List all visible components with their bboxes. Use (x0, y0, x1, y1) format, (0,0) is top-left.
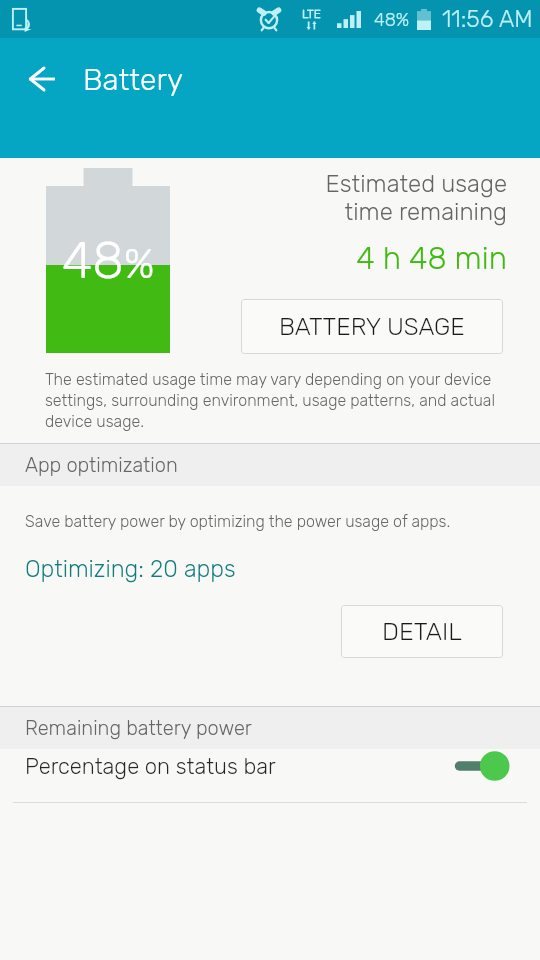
button[interactable]: Navigate up (9, 50, 75, 108)
staticText: LTE (302, 7, 321, 21)
staticText: Save battery power by optimizing the pow… (25, 512, 451, 531)
staticText: App optimization (25, 453, 178, 477)
staticText: DETAIL (382, 617, 463, 647)
staticText: Optimizing: 20 apps (25, 555, 236, 583)
staticText: Battery (83, 62, 183, 98)
staticText: Estimated usage (325, 170, 507, 198)
staticText: The estimated usage time may vary depend… (45, 370, 505, 431)
staticText: 48% (374, 9, 410, 30)
staticText: 48 (62, 230, 124, 290)
staticText: Remaining battery power (25, 716, 252, 740)
button[interactable]: Percentage on status bar (0, 740, 540, 792)
staticText: 4 h 48 min (210, 240, 507, 277)
staticText: Percentage on status bar (25, 753, 276, 779)
button[interactable]: BATTERY USAGE (241, 299, 503, 354)
staticText: BATTERY USAGE (279, 312, 465, 341)
staticText: time remaining (344, 198, 507, 226)
button[interactable]: DETAIL (341, 605, 503, 658)
staticText: % (124, 240, 155, 289)
staticText: 11:56 AM (442, 5, 533, 33)
